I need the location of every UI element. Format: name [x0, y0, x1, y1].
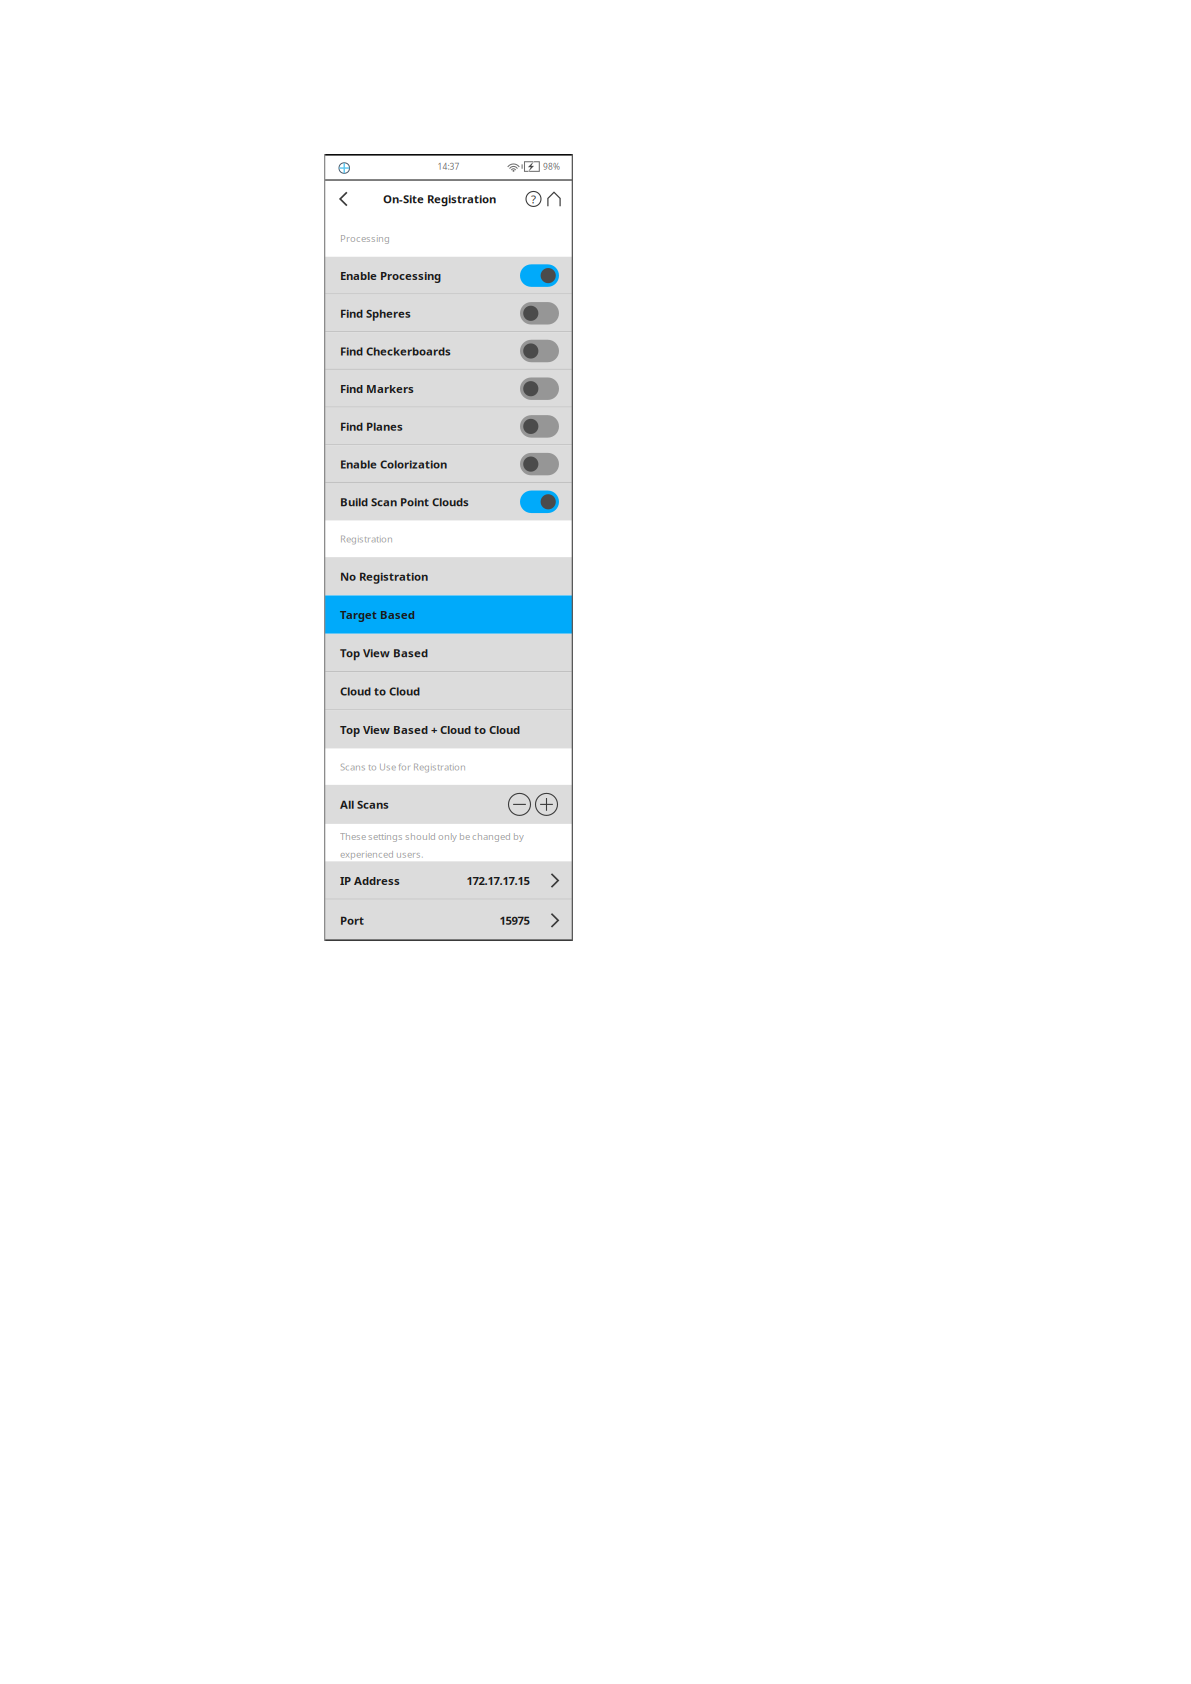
button[interactable]: Remove scan — [506, 785, 533, 824]
button[interactable]: Find Markers — [324, 370, 573, 407]
button[interactable]: Enable Colorization — [324, 445, 573, 483]
staticText: These settings should only be changed by — [340, 830, 524, 843]
button[interactable]: Back — [331, 181, 355, 217]
button[interactable]: Top View Based — [324, 634, 573, 672]
staticText: No Registration — [340, 569, 428, 584]
staticText: Build Scan Point Clouds — [340, 494, 469, 509]
staticText: Scans to Use for Registration — [340, 760, 466, 773]
staticText: Find Spheres — [340, 306, 411, 321]
button[interactable]: Enable Processing — [324, 257, 573, 294]
staticText: Top View Based — [340, 645, 428, 661]
button[interactable]: Build Scan Point Clouds — [324, 483, 573, 521]
staticText: All Scans — [340, 797, 389, 812]
staticText: Top View Based + Cloud to Cloud — [340, 722, 520, 737]
staticText: 15975 — [500, 913, 530, 928]
staticText: Target Based — [340, 607, 415, 622]
staticText: experienced users. — [340, 848, 424, 861]
staticText: Processing — [340, 232, 390, 245]
staticText: Enable Processing — [340, 268, 441, 283]
button[interactable]: Help — [523, 181, 543, 217]
staticText: Port — [340, 913, 364, 928]
button[interactable]: Find Planes — [324, 407, 573, 445]
button[interactable]: Add scan — [533, 785, 560, 824]
button[interactable]: IP Address — [324, 861, 573, 900]
staticText: Enable Colorization — [340, 456, 447, 472]
button[interactable]: Find Spheres — [324, 294, 573, 332]
staticText: Registration — [340, 532, 393, 545]
staticText: IP Address — [340, 873, 400, 888]
staticText: 172.17.17.15 — [467, 873, 530, 888]
button[interactable]: Home — [543, 181, 564, 217]
staticText: ? — [531, 191, 536, 207]
staticText: Find Checkerboards — [340, 343, 451, 359]
staticText: Find Markers — [340, 381, 414, 396]
staticText: Cloud to Cloud — [340, 683, 420, 699]
button[interactable]: Cloud to Cloud — [324, 672, 573, 710]
button[interactable]: Port — [324, 900, 573, 941]
button[interactable]: Top View Based + Cloud to Cloud — [324, 710, 573, 749]
staticText: Find Planes — [340, 419, 403, 434]
button[interactable]: No Registration — [324, 557, 573, 595]
button[interactable]: Target Based — [324, 595, 573, 634]
staticText: 14:37 — [437, 161, 459, 172]
button[interactable]: Find Checkerboards — [324, 332, 573, 370]
staticText: On-Site Registration — [383, 191, 496, 207]
staticText: 98% — [543, 161, 560, 172]
